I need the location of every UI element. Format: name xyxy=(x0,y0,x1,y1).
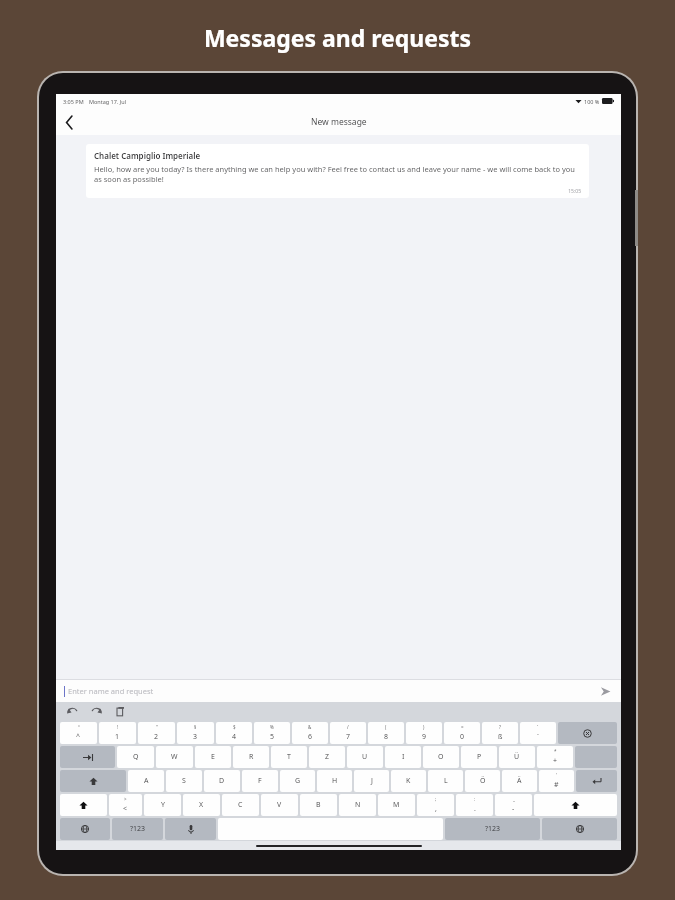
staticText: § xyxy=(194,724,197,730)
staticText: Ü xyxy=(514,752,520,762)
button[interactable]: ` xyxy=(520,722,556,744)
button[interactable]: R xyxy=(233,746,269,768)
button[interactable]: ?123 xyxy=(445,818,540,840)
button[interactable]: del xyxy=(558,722,617,744)
staticText: = xyxy=(461,724,464,730)
staticText: M xyxy=(393,800,400,810)
staticText: P xyxy=(477,752,482,762)
staticText: & xyxy=(308,724,312,730)
staticText: 1 xyxy=(115,732,120,742)
button[interactable]: W xyxy=(156,746,193,768)
button[interactable]: : xyxy=(456,794,493,816)
button[interactable]: X xyxy=(183,794,220,816)
button[interactable]: shiftUp xyxy=(60,794,107,816)
staticText: < xyxy=(123,804,128,814)
button[interactable]: C xyxy=(222,794,259,816)
button[interactable]: tab xyxy=(60,746,115,768)
button[interactable]: Y xyxy=(144,794,181,816)
button[interactable]: B xyxy=(300,794,337,816)
button[interactable]: ( xyxy=(368,722,404,744)
staticText: O xyxy=(438,752,444,762)
staticText: ´ xyxy=(537,732,539,742)
button[interactable]: ? xyxy=(482,722,518,744)
staticText: % xyxy=(270,724,274,730)
staticText: 6 xyxy=(308,732,313,742)
button[interactable]: J xyxy=(354,770,389,792)
button[interactable]: Paste xyxy=(114,705,127,718)
button[interactable]: N xyxy=(339,794,376,816)
button[interactable]: mic xyxy=(165,818,216,840)
button[interactable]: T xyxy=(271,746,307,768)
button[interactable]: H xyxy=(317,770,352,792)
button[interactable]: Enter name and request xyxy=(68,686,597,696)
button[interactable]: ' xyxy=(539,770,574,792)
staticText: 8 xyxy=(384,732,389,742)
button[interactable]: enter xyxy=(576,770,617,792)
button[interactable]: ° xyxy=(60,722,97,744)
button[interactable]: G xyxy=(280,770,315,792)
button[interactable]: I xyxy=(385,746,421,768)
button[interactable]: Z xyxy=(309,746,345,768)
button[interactable]: ) xyxy=(406,722,442,744)
button[interactable]: Send xyxy=(597,683,613,699)
staticText: * xyxy=(554,748,557,754)
staticText: " xyxy=(156,724,158,730)
button[interactable]: A xyxy=(128,770,164,792)
button[interactable]: shiftUp xyxy=(534,794,617,816)
staticText: New message xyxy=(311,116,367,128)
button[interactable]: _ xyxy=(495,794,532,816)
button[interactable]: = xyxy=(444,722,480,744)
button[interactable]: E xyxy=(195,746,231,768)
button[interactable]: M xyxy=(378,794,415,816)
button[interactable]: " xyxy=(138,722,175,744)
button[interactable]: P xyxy=(461,746,497,768)
button[interactable]: ?123 xyxy=(112,818,163,840)
staticText: - xyxy=(512,804,515,814)
staticText: ?123 xyxy=(485,824,501,834)
staticText: S xyxy=(182,776,186,786)
button[interactable]: * xyxy=(537,746,573,768)
staticText: K xyxy=(406,776,411,786)
button[interactable]: § xyxy=(177,722,214,744)
button[interactable]: Q xyxy=(117,746,154,768)
staticText: A xyxy=(144,776,149,786)
staticText: , xyxy=(435,804,437,814)
button[interactable]: ; xyxy=(417,794,454,816)
button[interactable]: ! xyxy=(99,722,136,744)
button[interactable]: > xyxy=(109,794,142,816)
button[interactable]: L xyxy=(428,770,463,792)
button[interactable]: K xyxy=(391,770,426,792)
button[interactable]: % xyxy=(254,722,290,744)
button[interactable]: Chalet Campiglio Imperiale xyxy=(86,144,589,198)
button[interactable]: globe xyxy=(60,818,110,840)
button[interactable]: Back xyxy=(56,109,82,135)
button[interactable]: S xyxy=(166,770,202,792)
button[interactable]: U xyxy=(347,746,383,768)
button[interactable]: Ö xyxy=(465,770,500,792)
staticText: D xyxy=(219,776,225,786)
staticText: Montag 17. Jul xyxy=(89,98,127,105)
button[interactable]: Undo xyxy=(66,705,79,718)
button[interactable]: Ü xyxy=(499,746,535,768)
button[interactable]: $ xyxy=(216,722,252,744)
button[interactable]: Ä xyxy=(502,770,537,792)
button[interactable]: V xyxy=(261,794,298,816)
staticText: Y xyxy=(161,800,165,810)
button[interactable]: globe xyxy=(542,818,617,840)
staticText: Z xyxy=(325,752,330,762)
button[interactable]: D xyxy=(204,770,240,792)
button[interactable]: shift xyxy=(60,770,126,792)
staticText: 100 % xyxy=(584,98,600,105)
staticText: > xyxy=(124,796,127,802)
staticText: # xyxy=(554,780,559,790)
button[interactable]: Redo xyxy=(90,705,103,718)
staticText: ; xyxy=(435,796,437,802)
staticText: 5 xyxy=(270,732,275,742)
button[interactable]: F xyxy=(242,770,278,792)
button[interactable]: O xyxy=(423,746,459,768)
staticText: F xyxy=(258,776,262,786)
button[interactable]: / xyxy=(330,722,366,744)
button[interactable]: & xyxy=(292,722,328,744)
